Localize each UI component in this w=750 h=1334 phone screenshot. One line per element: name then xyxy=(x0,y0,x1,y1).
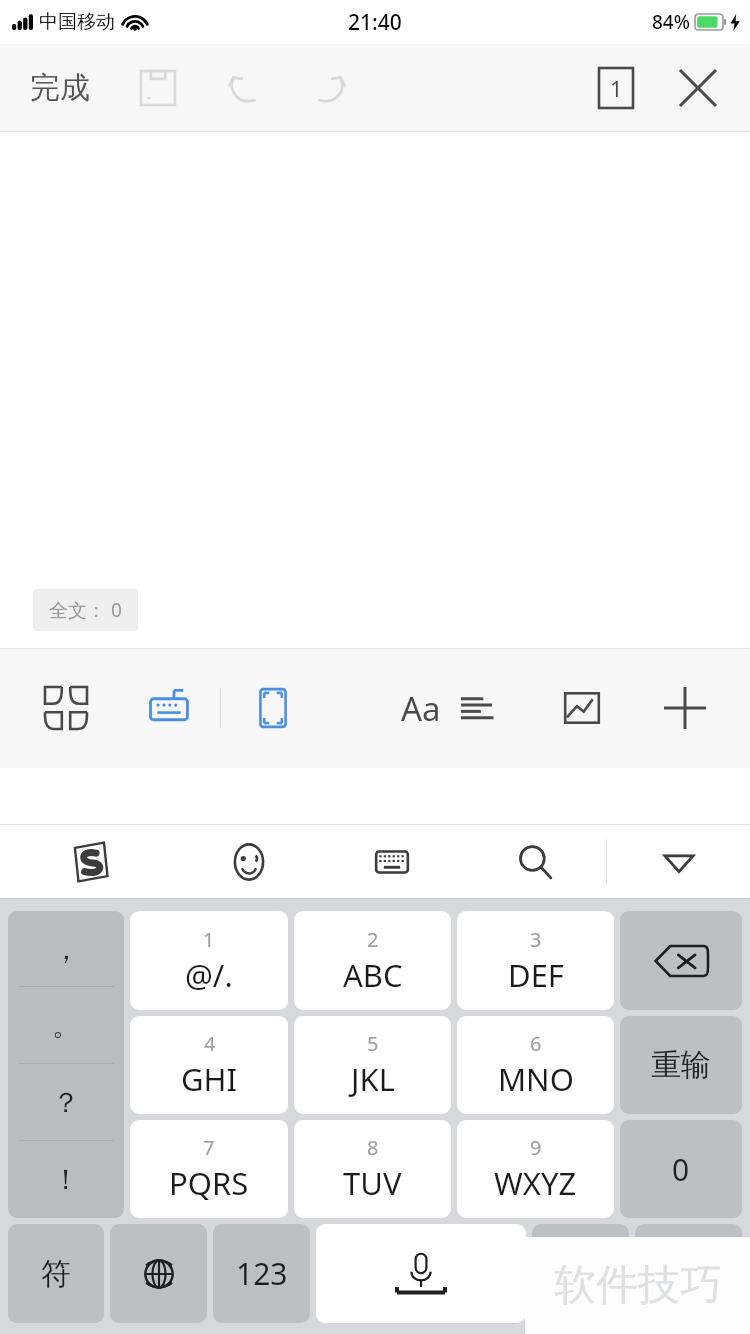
button[interactable]: 符 xyxy=(8,1224,104,1323)
staticText: 6 xyxy=(530,1030,542,1057)
button[interactable]: 3 xyxy=(457,911,614,1010)
staticText: 全文： 0 xyxy=(49,597,122,623)
button[interactable]: 6 xyxy=(457,1016,614,1114)
button[interactable]: 全文： 0 xyxy=(33,589,138,631)
button[interactable]: Close xyxy=(672,62,724,114)
button[interactable]: Search xyxy=(463,824,606,900)
button[interactable]: Font xyxy=(324,648,427,768)
button[interactable]: 1 xyxy=(130,911,288,1010)
staticText: Aa xyxy=(401,686,441,731)
button[interactable]: Apps xyxy=(14,648,117,768)
button[interactable]: 0 xyxy=(620,1120,742,1218)
button[interactable]: Emoji xyxy=(177,824,320,900)
staticText: 1 xyxy=(610,73,623,103)
staticText: 软件技巧 xyxy=(554,1259,722,1312)
staticText: ！ xyxy=(52,1162,80,1197)
staticText: 2 xyxy=(367,926,379,953)
button[interactable]: Page count xyxy=(590,62,642,114)
staticText: 123 xyxy=(236,1253,288,1294)
button[interactable]: 重输 xyxy=(620,1016,742,1114)
staticText: 9 xyxy=(530,1134,542,1161)
button[interactable]: 9 xyxy=(457,1120,614,1218)
staticText: DEF xyxy=(508,954,564,996)
button[interactable]: 5 xyxy=(294,1016,451,1114)
staticText: 中 xyxy=(566,1255,596,1293)
staticText: 5 xyxy=(367,1030,379,1057)
staticText: GHI xyxy=(181,1058,238,1100)
button[interactable]: Image xyxy=(530,648,633,768)
staticText: 重输 xyxy=(651,1046,711,1084)
button[interactable]: 7 xyxy=(130,1120,288,1218)
staticText: 完成 xyxy=(30,69,90,107)
button[interactable]: Align xyxy=(427,648,530,768)
button[interactable]: Keyboard input xyxy=(117,648,220,768)
staticText: 7 xyxy=(203,1134,215,1161)
staticText: 0 xyxy=(672,1149,690,1190)
staticText: @/. xyxy=(185,954,233,996)
button[interactable]: Keyboard xyxy=(320,824,463,900)
button[interactable]: Backspace xyxy=(620,911,742,1010)
button[interactable]: Sogou xyxy=(0,824,177,900)
button[interactable]: Hide keyboard xyxy=(607,824,750,900)
staticText: 符 xyxy=(41,1255,71,1293)
staticText: 。 xyxy=(52,1008,80,1043)
button[interactable]: Undo xyxy=(218,62,270,114)
staticText: 1 xyxy=(203,926,215,953)
button[interactable]: Enter xyxy=(635,1224,742,1323)
staticText: 中国移动 xyxy=(39,10,115,34)
staticText: TUV xyxy=(343,1162,402,1204)
button[interactable]: ， xyxy=(8,911,124,1218)
button[interactable]: Language xyxy=(110,1224,207,1323)
staticText: ？ xyxy=(52,1085,80,1120)
button[interactable]: Redo xyxy=(304,62,356,114)
staticText: 8 xyxy=(367,1134,379,1161)
button[interactable]: Save xyxy=(132,62,184,114)
staticText: 84% xyxy=(652,9,690,35)
staticText: ABC xyxy=(343,954,403,996)
staticText: ， xyxy=(52,932,80,967)
staticText: JKL xyxy=(351,1058,395,1100)
staticText: 21:40 xyxy=(348,8,402,37)
staticText: 4 xyxy=(204,1030,216,1057)
button[interactable]: Space / voice input xyxy=(316,1224,526,1323)
button[interactable]: Select area xyxy=(221,648,324,768)
staticText: WXYZ xyxy=(494,1162,577,1204)
button[interactable]: Add xyxy=(633,648,736,768)
button[interactable]: 123 xyxy=(213,1224,310,1323)
staticText: PQRS xyxy=(169,1162,249,1204)
button[interactable]: 2 xyxy=(294,911,451,1010)
button[interactable]: 中 xyxy=(532,1224,629,1323)
button[interactable]: 8 xyxy=(294,1120,451,1218)
button[interactable]: 4 xyxy=(130,1016,288,1114)
button[interactable]: 完成 xyxy=(26,61,94,115)
staticText: MNO xyxy=(498,1058,574,1100)
staticText: 3 xyxy=(530,926,542,953)
